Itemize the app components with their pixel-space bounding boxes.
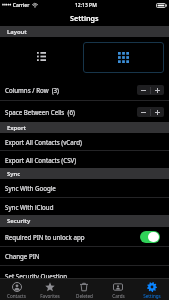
staticText: Sync With Google bbox=[5, 184, 56, 192]
button[interactable]: Set Security Question bbox=[0, 266, 169, 285]
staticText: Change PIN bbox=[5, 252, 40, 260]
button[interactable]: Change PIN bbox=[0, 247, 169, 265]
button[interactable]: Decrease bbox=[137, 107, 150, 117]
button[interactable]: Decrease bbox=[137, 85, 150, 95]
staticText: Set Security Question bbox=[5, 272, 68, 280]
staticText: Security bbox=[7, 217, 31, 225]
button[interactable]: Settings bbox=[135, 279, 169, 300]
staticText: Contacts bbox=[7, 293, 26, 299]
staticText: Favorites bbox=[40, 293, 60, 299]
staticText: Export All Contacts (CSV) bbox=[5, 156, 77, 164]
staticText: Layout bbox=[7, 28, 27, 36]
staticText: Required PIN to unlock app bbox=[5, 233, 85, 241]
button[interactable]: Favorites bbox=[33, 279, 67, 300]
button[interactable]: Grid layout bbox=[83, 42, 164, 73]
staticText: Settings bbox=[70, 13, 99, 23]
staticText: Cards bbox=[112, 293, 125, 299]
staticText: Deleted bbox=[76, 293, 93, 299]
staticText: 12:13 PM bbox=[75, 2, 97, 9]
button[interactable]: Cards bbox=[101, 279, 135, 300]
button[interactable]: Export All Contacts (vCard) bbox=[0, 133, 169, 150]
button[interactable]: Increase bbox=[151, 85, 164, 95]
button[interactable]: Sync With Google bbox=[0, 179, 169, 197]
button[interactable]: Contacts bbox=[0, 279, 33, 300]
staticText: Sync bbox=[7, 170, 21, 178]
button[interactable]: Export All Contacts (CSV) bbox=[0, 151, 169, 168]
button[interactable]: List layout bbox=[0, 37, 83, 79]
button[interactable]: Sync With iCloud bbox=[0, 198, 169, 215]
staticText: Sync With iCloud bbox=[5, 203, 54, 211]
staticText: Export bbox=[7, 124, 26, 132]
button[interactable]: Required PIN to unlock app bbox=[0, 227, 169, 246]
button[interactable]: Deleted bbox=[67, 279, 101, 300]
button[interactable]: Increase bbox=[151, 107, 164, 117]
staticText: Space Between Cells (6) bbox=[5, 108, 75, 116]
staticText: Settings bbox=[143, 293, 161, 299]
staticText: ••••• Carrier bbox=[2, 2, 30, 9]
staticText: Columns / Row (3) bbox=[5, 86, 59, 94]
staticText: Export All Contacts (vCard) bbox=[5, 138, 82, 146]
